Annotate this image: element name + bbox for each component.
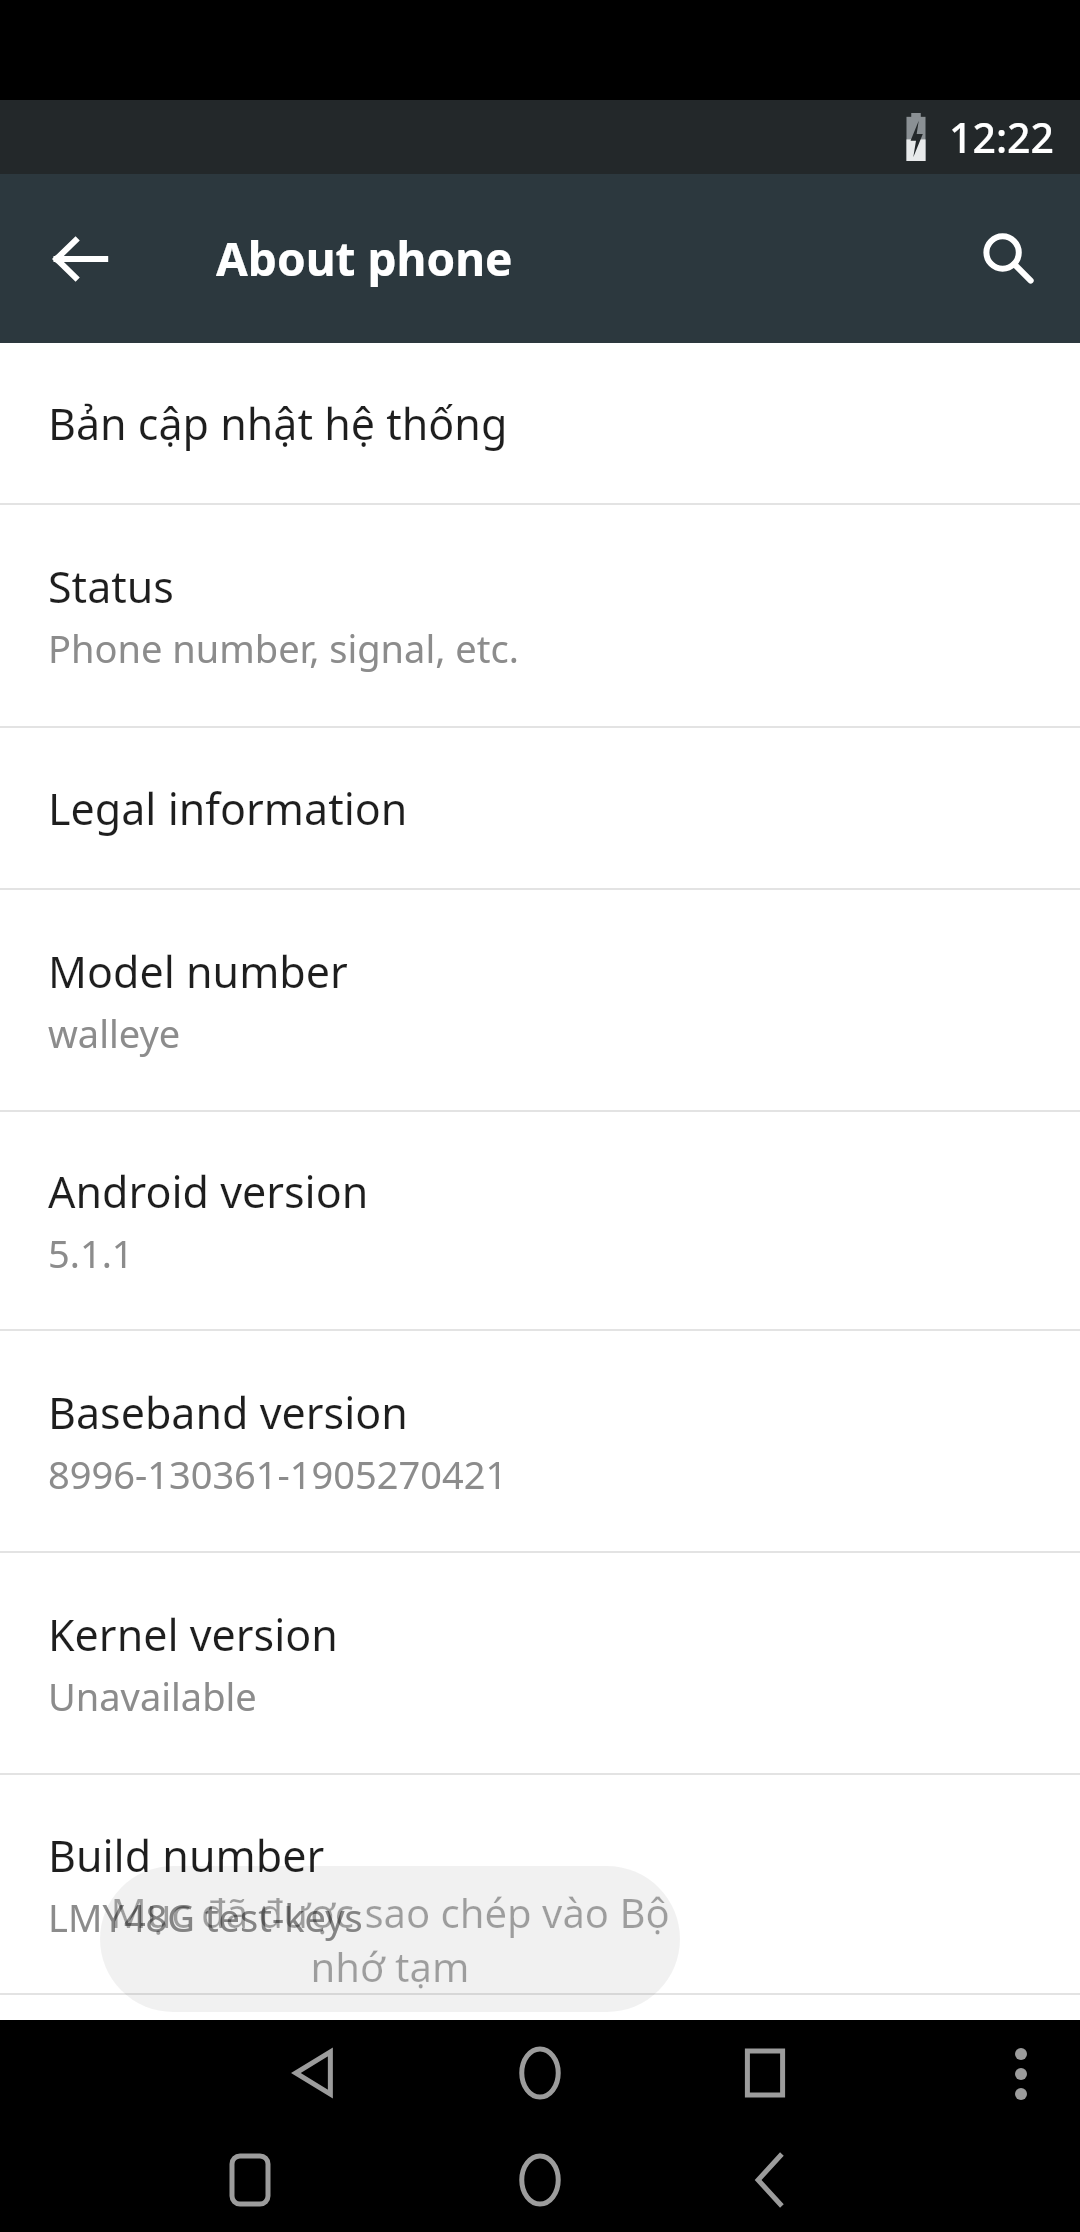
button[interactable]: Back [26, 205, 134, 313]
button[interactable]: Back [717, 2128, 823, 2232]
button[interactable]: Kernel version [0, 1553, 1080, 1773]
button[interactable]: Back [262, 2020, 368, 2126]
button[interactable]: Baseband version [0, 1331, 1080, 1551]
staticText: walleye [48, 1007, 181, 1059]
button[interactable]: Legal information [0, 728, 1080, 888]
staticText: About phone [216, 227, 513, 290]
staticText: Kernel version [48, 1605, 338, 1664]
staticText: 5.1.1 [48, 1227, 134, 1279]
button[interactable]: Recents [712, 2020, 818, 2126]
button[interactable]: Build number [0, 1775, 1080, 1993]
staticText: Baseband version [48, 1383, 408, 1442]
staticText: Bản cập nhật hệ thống [48, 394, 508, 453]
staticText: Model number [48, 942, 348, 1001]
staticText: Mục đã được sao chép vào Bộ nhớ tạm [100, 1885, 680, 1993]
button[interactable]: Android version [0, 1112, 1080, 1329]
staticText: LMY48G test-keys [48, 1891, 363, 1943]
button[interactable]: Home [487, 2020, 593, 2126]
staticText: Phone number, signal, etc. [48, 622, 519, 674]
staticText: 12:22 [949, 109, 1054, 165]
staticText: Unavailable [48, 1670, 257, 1722]
button[interactable]: Status [0, 505, 1080, 726]
button[interactable]: Search [954, 205, 1062, 313]
button[interactable]: Recents [197, 2128, 303, 2232]
staticText: Status [48, 557, 174, 616]
staticText: Legal information [48, 779, 408, 838]
button[interactable]: More options [968, 2021, 1074, 2127]
staticText: 8996-130361-1905270421 [48, 1448, 508, 1500]
staticText: Build number [48, 1826, 325, 1885]
button[interactable]: Model number [0, 890, 1080, 1110]
button[interactable]: Home [487, 2128, 593, 2232]
staticText: Android version [48, 1162, 369, 1221]
button[interactable]: Bản cập nhật hệ thống [0, 343, 1080, 503]
